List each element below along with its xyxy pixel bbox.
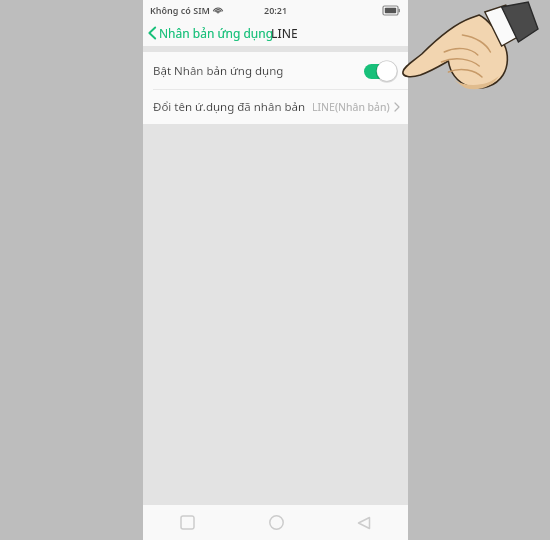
button[interactable]: Nhân bản ứng dụng [143,22,278,44]
button[interactable]: Home [232,505,320,540]
staticText: LINE(Nhân bản) [312,100,390,114]
staticText: Không có SIM [150,4,210,16]
staticText: LINE [271,25,298,41]
button[interactable]: Recents [143,505,232,540]
staticText: Đổi tên ứ.dụng đã nhân bản [153,99,306,115]
staticText: Nhân bản ứng dụng [159,25,274,41]
button[interactable]: Bật Nhân bản ứng dụng [143,52,408,89]
button[interactable]: Back [320,505,408,540]
staticText: 20:21 [264,4,288,16]
button[interactable]: Bật Nhân bản ứng dụng [364,60,398,82]
staticText: Bật Nhân bản ứng dụng [153,63,284,79]
button[interactable]: Đổi tên ứ.dụng đã nhân bản [143,90,408,124]
